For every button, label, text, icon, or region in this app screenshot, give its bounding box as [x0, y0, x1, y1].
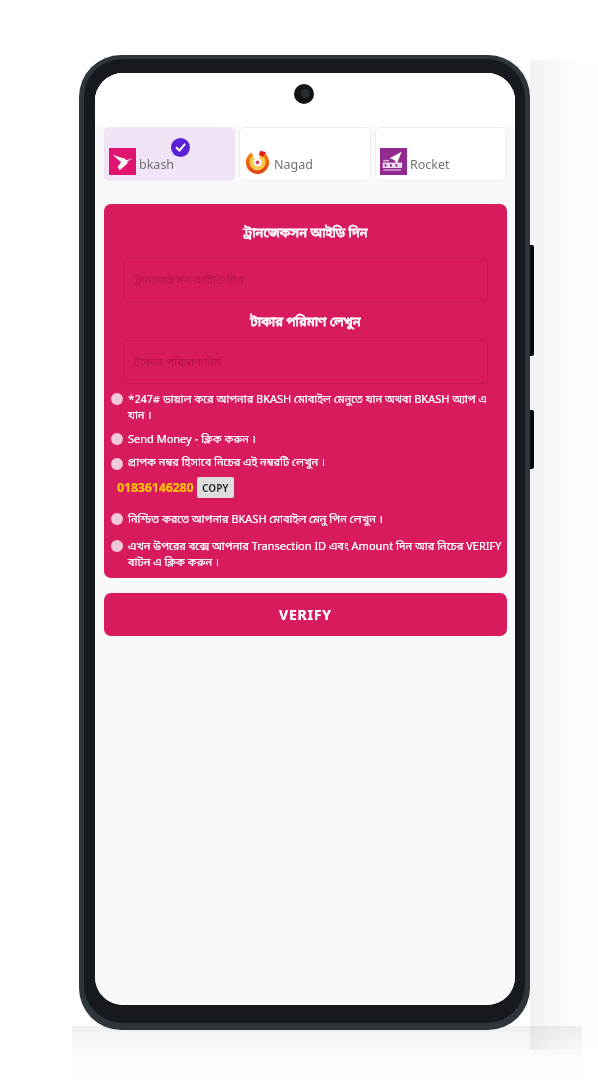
- staticText: *247# ডায়াল করে আপনার BKASH মোবাইল মেনু…: [128, 391, 506, 423]
- button[interactable]: COPY: [197, 477, 234, 498]
- button[interactable]: টাকার পরিমাণ দিন: [123, 340, 488, 384]
- button[interactable]: Nagad: [239, 127, 371, 181]
- staticText: টাকার পরিমাণ লেখুন: [104, 314, 507, 331]
- staticText: 01836146280: [117, 479, 194, 496]
- staticText: Rocket: [410, 156, 450, 173]
- button[interactable]: Rocket: [375, 127, 507, 181]
- button[interactable]: bkash: [104, 127, 235, 181]
- button[interactable]: VERIFY: [104, 593, 507, 636]
- staticText: টাকার পরিমাণ দিন: [134, 355, 222, 370]
- button[interactable]: ট্রানজেকসন আইডি দিন: [123, 258, 488, 302]
- staticText: Nagad: [274, 156, 313, 173]
- staticText: এখন উপরের বক্সে আপনার Transection ID এবং…: [128, 538, 506, 570]
- staticText: প্রাপক নম্বর হিসাবে নিচের এই নম্বরটি লেখ…: [128, 456, 326, 471]
- staticText: ট্রানজেকসন আইডি দিন: [134, 273, 244, 288]
- other: Front camera: [294, 84, 314, 104]
- staticText: Send Money - ক্লিক করুন ।: [128, 431, 256, 447]
- staticText: VERIFY: [279, 605, 332, 624]
- staticText: নিশ্চিত করতে আপনার BKASH মোবাইল মেনু পিন…: [128, 511, 383, 527]
- staticText: ট্রানজেকসন আইডি দিন: [104, 225, 507, 242]
- staticText: bkash: [139, 156, 175, 173]
- staticText: COPY: [202, 481, 229, 495]
